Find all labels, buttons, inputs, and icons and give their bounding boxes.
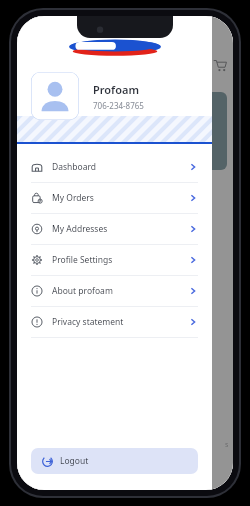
- button[interactable]: Privacy statement: [17, 307, 212, 337]
- staticText: My Orders: [52, 192, 188, 204]
- button[interactable]: Dashboard: [17, 152, 212, 182]
- staticText: My Addresses: [52, 223, 188, 235]
- staticText: Profoam: [93, 82, 139, 97]
- button[interactable]: My Orders: [17, 183, 212, 213]
- button[interactable]: Cart: [213, 58, 227, 72]
- button[interactable]: Logout: [31, 448, 198, 474]
- staticText: Privacy statement: [52, 316, 188, 328]
- staticText: About profoam: [52, 285, 188, 297]
- button[interactable]: My Addresses: [17, 214, 212, 244]
- button[interactable]: Profile Settings: [17, 245, 212, 275]
- staticText: 706-234-8765: [93, 100, 144, 111]
- staticText: Logout: [60, 455, 89, 467]
- button[interactable]: About profoam: [17, 276, 212, 306]
- staticText: profoam: [29, 126, 58, 136]
- staticText: Profile Settings: [52, 254, 188, 266]
- staticText: s: [225, 440, 229, 450]
- staticText: Dashboard: [52, 161, 188, 173]
